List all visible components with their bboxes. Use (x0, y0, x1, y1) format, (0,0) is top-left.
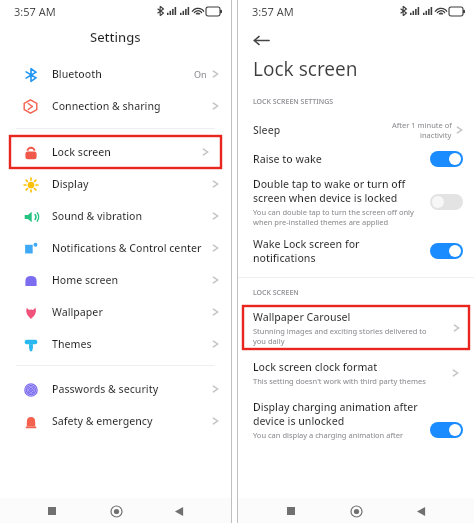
staticText: Lock screen clock format (253, 360, 378, 374)
staticText: You can display a charging animation aft… (253, 430, 404, 440)
button[interactable]: Sound & vibration (0, 200, 231, 232)
button[interactable]: Bluetooth (0, 58, 231, 90)
staticText: Raise to wake (253, 152, 322, 166)
staticText: LOCK SCREEN (253, 288, 299, 298)
staticText: Lock screen (253, 56, 358, 82)
button[interactable]: Wallpaper (0, 296, 231, 328)
button[interactable]: Back (167, 499, 191, 523)
staticText: 3:57 AM (14, 4, 56, 19)
staticText: Wallpaper (52, 305, 212, 319)
staticText: Safety & emergency (52, 414, 212, 428)
staticText: 3:57 AM (252, 4, 294, 19)
button[interactable]: Wallpaper Carousel (243, 306, 469, 349)
button[interactable]: Home (344, 499, 368, 523)
button[interactable]: Enabled (430, 151, 463, 167)
staticText: Display (52, 177, 212, 191)
staticText: Wake Lock screen for (253, 237, 360, 251)
staticText: Sound & vibration (52, 209, 212, 223)
staticText: screen when device is locked (253, 191, 398, 205)
button[interactable]: Display (0, 168, 231, 200)
staticText: This setting doesn't work with third par… (253, 376, 426, 386)
staticText: You can double tap to turn the screen of… (253, 207, 414, 217)
button[interactable]: Double tap to wake or turn off (238, 177, 474, 227)
staticText: Notifications & Control center (52, 241, 212, 255)
button[interactable]: Recents (40, 499, 64, 523)
staticText: Stunning images and exciting stories del… (253, 326, 427, 336)
staticText: Sleep (253, 123, 392, 137)
staticText: Lock screen (52, 145, 202, 159)
staticText: Bluetooth (52, 67, 194, 81)
staticText: device is unlocked (253, 414, 345, 428)
staticText: notifications (253, 251, 316, 265)
button[interactable]: Passwords & security (0, 373, 231, 405)
staticText: Connection & sharing (52, 99, 212, 113)
staticText: when pre-installed themes are applied (253, 217, 389, 227)
button[interactable]: Safety & emergency (0, 405, 231, 437)
staticText: After 1 minute of (392, 120, 452, 130)
button[interactable]: Lock screen (10, 136, 221, 168)
button[interactable]: Recents (279, 499, 303, 523)
button[interactable]: Themes (0, 328, 231, 360)
staticText: LOCK SCREEN SETTINGS (253, 97, 334, 107)
button[interactable]: Back (248, 27, 274, 53)
button[interactable]: Home (104, 499, 128, 523)
staticText: Double tap to wake or turn off (253, 177, 406, 191)
button[interactable]: Display charging animation after (238, 400, 474, 440)
button[interactable]: Lock screen clock format (238, 360, 474, 386)
staticText: Wallpaper Carousel (253, 310, 351, 324)
button[interactable]: Connection & sharing (0, 90, 231, 122)
staticText: Passwords & security (52, 382, 212, 396)
staticText: On (194, 68, 207, 80)
button[interactable]: Enabled (430, 243, 463, 259)
staticText: Themes (52, 337, 212, 351)
button[interactable]: Notifications & Control center (0, 232, 231, 264)
button[interactable]: Enabled (430, 422, 463, 438)
button[interactable]: Disabled (430, 194, 463, 210)
button[interactable]: Wake Lock screen for (238, 237, 474, 265)
staticText: Home screen (52, 273, 212, 287)
button[interactable]: Home screen (0, 264, 231, 296)
button[interactable]: Sleep (238, 120, 474, 140)
staticText: Display charging animation after (253, 400, 418, 414)
staticText: Settings (90, 28, 141, 46)
button[interactable]: Raise to wake (238, 151, 474, 167)
button[interactable]: Back (409, 499, 433, 523)
staticText: you daily (253, 336, 285, 346)
staticText: inactivity (420, 130, 452, 140)
